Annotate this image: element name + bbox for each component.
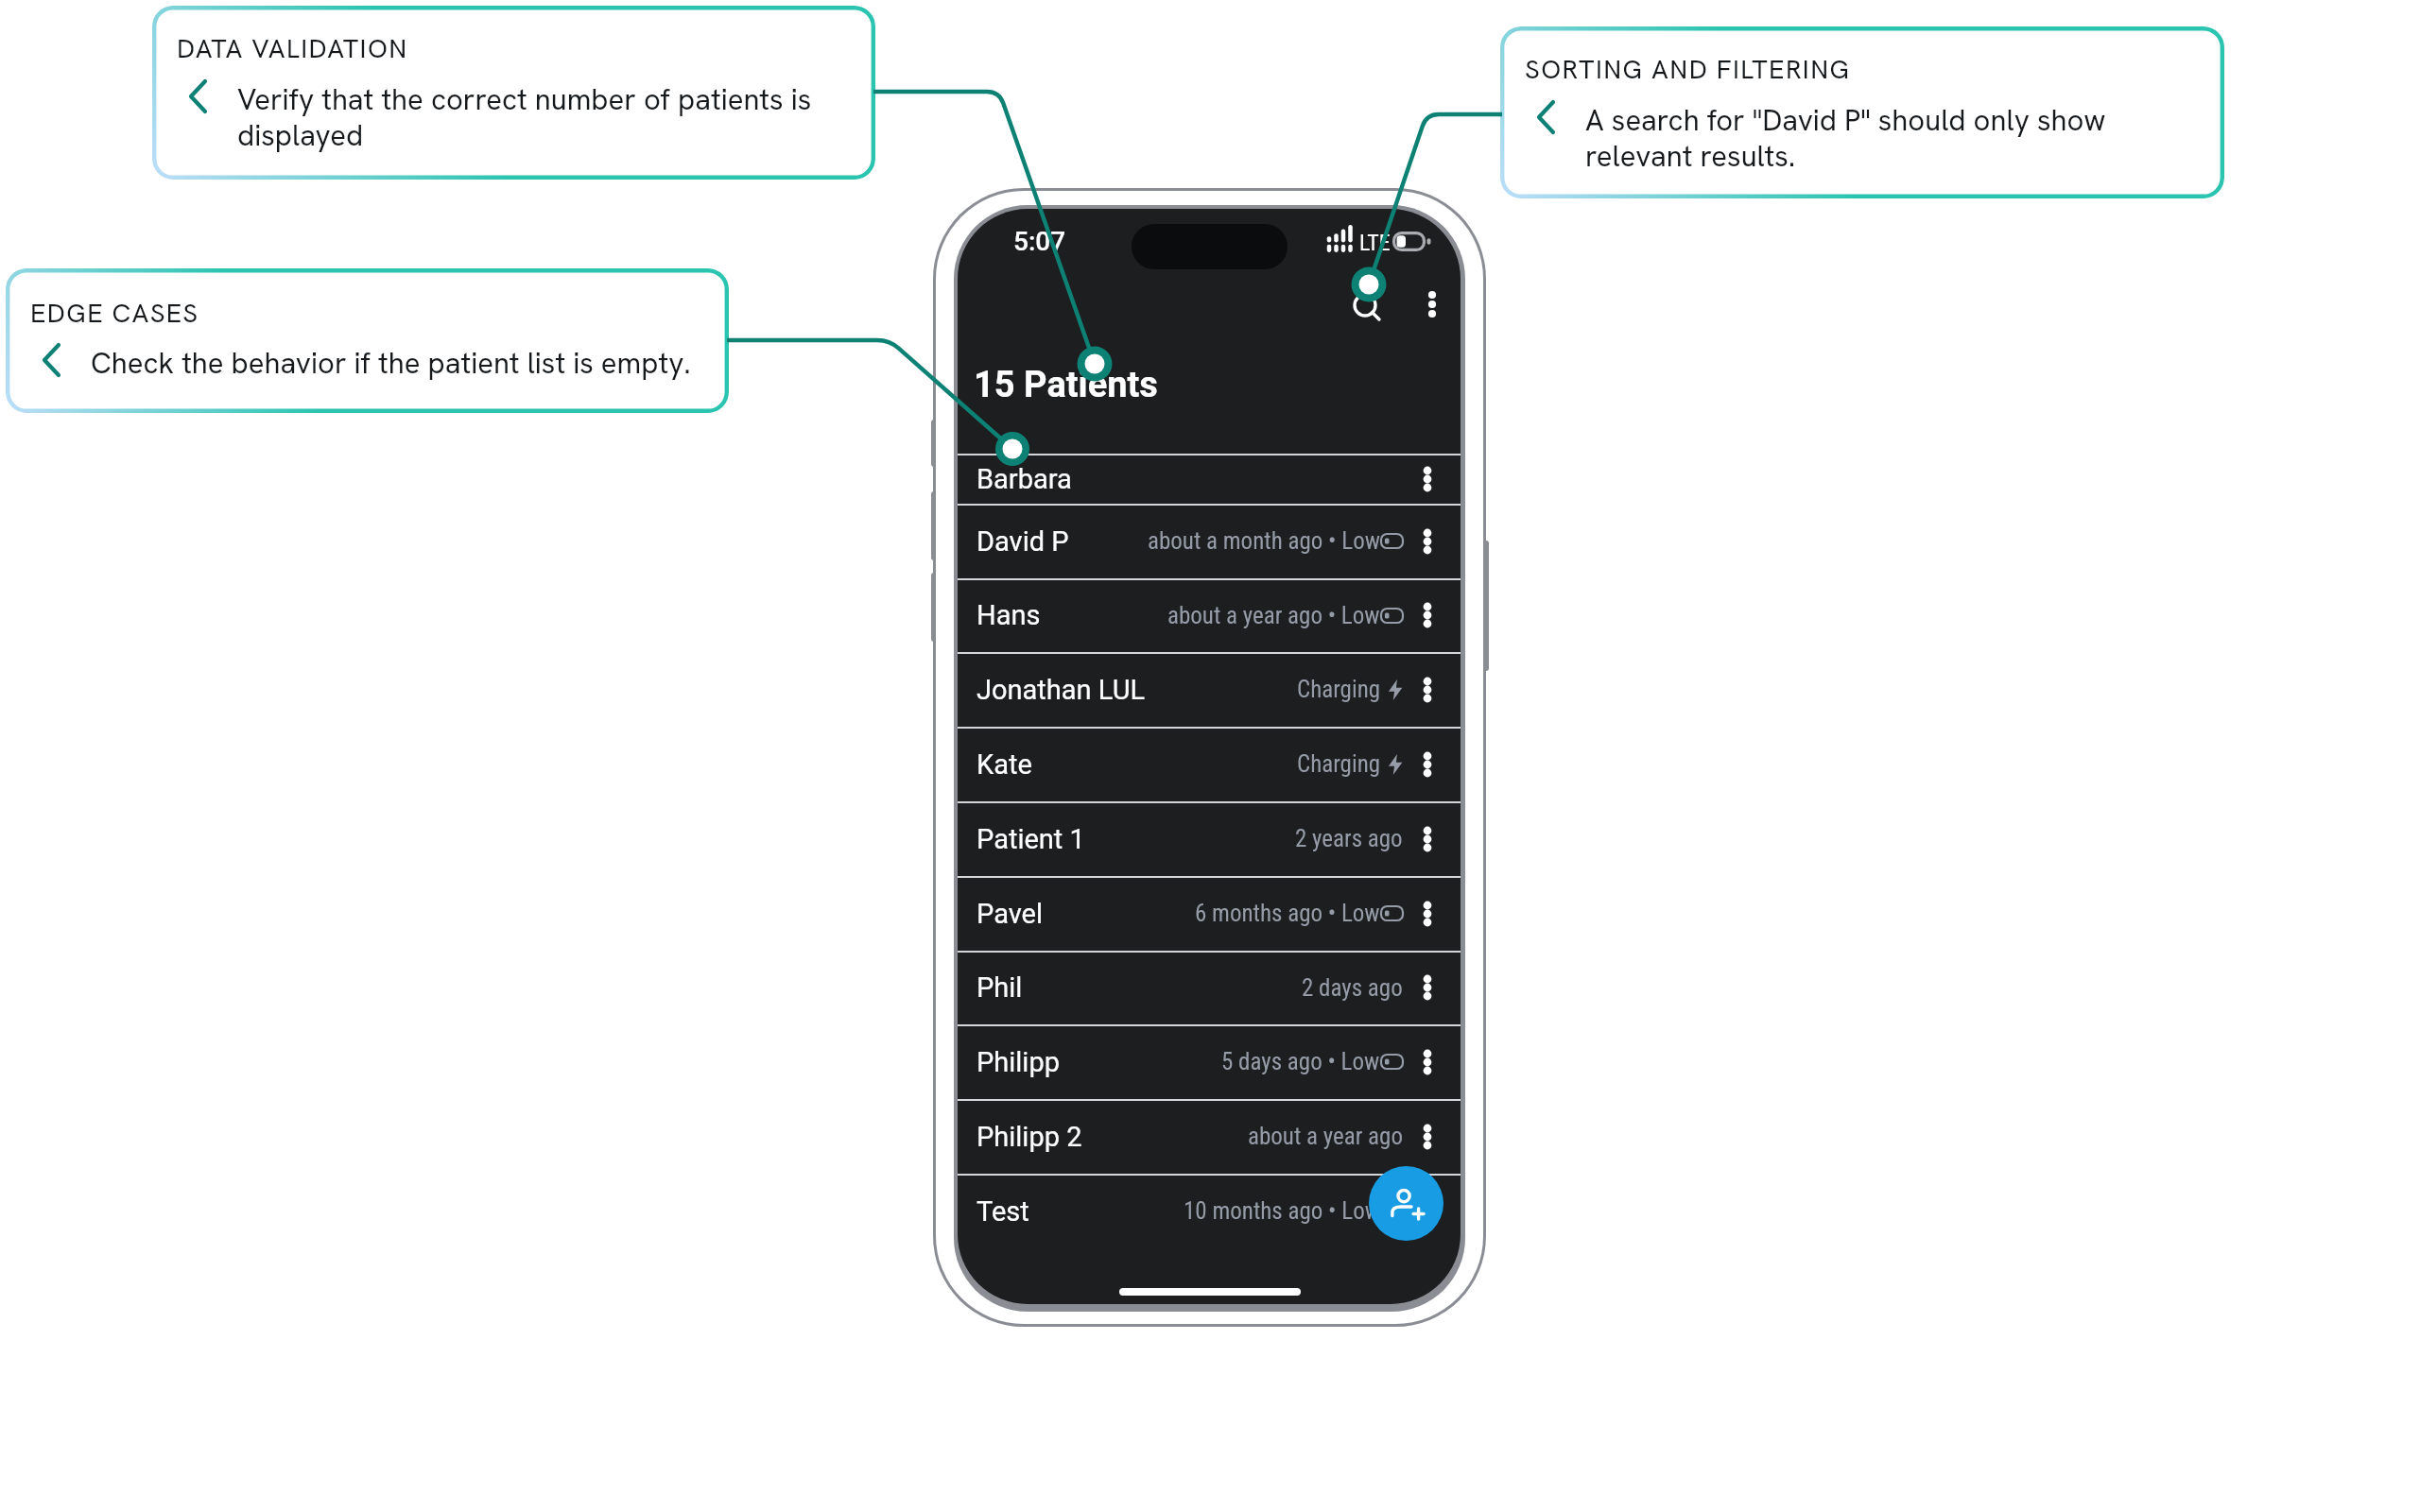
button[interactable]: DATA VALIDATION (152, 6, 875, 180)
staticText: 2 days ago (1302, 974, 1403, 1002)
button[interactable]: Hans (958, 578, 1461, 652)
button[interactable]: More options (1414, 951, 1441, 1024)
staticText: Verify that the correct number of patien… (237, 80, 812, 155)
button[interactable]: SORTING AND FILTERING (1500, 26, 2224, 198)
button[interactable]: Test (958, 1174, 1461, 1248)
button[interactable]: Philipp (958, 1024, 1461, 1099)
button[interactable]: Barbara (958, 454, 1461, 504)
staticText: A search for "David P" should only show … (1585, 101, 2106, 176)
button[interactable]: Search (1331, 271, 1399, 339)
button[interactable]: Add patient (1369, 1166, 1443, 1241)
staticText: Kate (977, 748, 1032, 781)
button[interactable]: David P (958, 504, 1461, 578)
staticText: Philipp (977, 1046, 1060, 1078)
button[interactable]: More options (1414, 1174, 1441, 1248)
staticText: Charging (1297, 676, 1381, 703)
staticText: Patient 1 (977, 823, 1085, 855)
button[interactable]: Philipp 2 (958, 1099, 1461, 1174)
staticText: about a month ago • Low (1148, 527, 1380, 555)
button[interactable]: More options (1414, 727, 1441, 801)
button[interactable]: Phil (958, 951, 1461, 1024)
staticText: 6 months ago • Low (1195, 900, 1380, 927)
staticText: Phil (977, 971, 1023, 1004)
staticText: Barbara (977, 463, 1072, 495)
staticText: about a year ago (1248, 1123, 1403, 1150)
staticText: Pavel (977, 898, 1043, 930)
staticText: 5:07 (1013, 226, 1066, 257)
staticText: about a year ago • Low (1167, 602, 1380, 629)
staticText: LTE (1359, 230, 1391, 256)
button[interactable]: More options (1414, 1099, 1441, 1174)
staticText: Jonathan LUL (977, 674, 1146, 706)
staticText: EDGE CASES (30, 296, 199, 330)
button[interactable]: Jonathan LUL (958, 652, 1461, 727)
staticText: David P (977, 525, 1069, 558)
button[interactable]: More options (1414, 652, 1441, 727)
button[interactable]: More options (1414, 1024, 1441, 1099)
button[interactable]: More options (1414, 876, 1441, 951)
button[interactable]: EDGE CASES (6, 268, 729, 413)
staticText: Philipp 2 (977, 1121, 1082, 1153)
staticText: Test (977, 1195, 1029, 1228)
staticText: Charging (1297, 750, 1381, 778)
staticText: 5 days ago • Low (1221, 1048, 1380, 1075)
button[interactable]: Kate (958, 727, 1461, 801)
staticText: 15 Patients (974, 364, 1158, 406)
staticText: DATA VALIDATION (177, 31, 408, 65)
button[interactable]: More options (1409, 271, 1461, 339)
staticText: 2 years ago (1295, 825, 1403, 852)
button[interactable]: More options (1414, 578, 1441, 652)
button[interactable]: Patient 1 (958, 801, 1461, 876)
staticText: SORTING AND FILTERING (1525, 52, 1851, 86)
button[interactable]: Pavel (958, 876, 1461, 951)
button[interactable]: More options (1414, 504, 1441, 578)
button[interactable]: More options (1414, 454, 1441, 504)
staticText: Check the behavior if the patient list i… (91, 344, 691, 382)
staticText: Hans (977, 599, 1041, 631)
button[interactable]: More options (1414, 801, 1441, 876)
staticText: 10 months ago • Low (1184, 1197, 1380, 1225)
